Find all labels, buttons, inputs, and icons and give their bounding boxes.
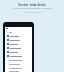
button[interactable]	[5, 34, 32, 38]
staticText: Sector más lindo	[18, 2, 46, 6]
button[interactable]	[5, 50, 32, 54]
button[interactable]	[5, 58, 32, 62]
button[interactable]	[5, 30, 32, 34]
staticText: todo lo que hay	[24, 11, 41, 14]
button[interactable]	[5, 70, 32, 72]
button[interactable]	[5, 66, 32, 70]
button[interactable]	[5, 38, 32, 42]
staticText: Elegí el sector que quieras y descubrí	[13, 7, 52, 10]
button[interactable]	[5, 46, 32, 50]
button[interactable]	[5, 54, 32, 58]
button[interactable]	[5, 62, 32, 66]
button[interactable]	[5, 42, 32, 46]
